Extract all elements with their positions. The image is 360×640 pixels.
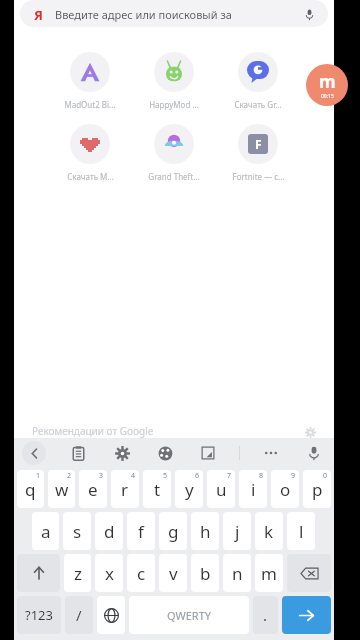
button[interactable]: More bbox=[259, 441, 283, 465]
staticText: v bbox=[169, 562, 178, 585]
staticText: b bbox=[200, 562, 211, 585]
staticText: Скачать М... bbox=[67, 171, 114, 182]
staticText: 6 bbox=[195, 471, 200, 481]
staticText: e bbox=[88, 478, 98, 501]
button[interactable]: h bbox=[191, 512, 219, 550]
button[interactable]: i bbox=[239, 470, 267, 508]
button[interactable]: p bbox=[303, 470, 331, 508]
staticText: c bbox=[137, 562, 146, 585]
button[interactable]: Скачать М... bbox=[48, 124, 132, 182]
button[interactable]: k bbox=[255, 512, 283, 550]
button[interactable]: Settings bbox=[304, 426, 316, 438]
staticText: 00:15 bbox=[321, 93, 334, 100]
button[interactable]: s bbox=[63, 512, 91, 550]
staticText: Grand Theft... bbox=[148, 171, 200, 182]
staticText: q bbox=[25, 478, 36, 501]
staticText: m bbox=[319, 70, 336, 93]
staticText: k bbox=[264, 520, 274, 543]
staticText: w bbox=[55, 478, 69, 501]
staticText: Я bbox=[34, 6, 43, 22]
staticText: j bbox=[235, 520, 240, 543]
staticText: p bbox=[312, 478, 323, 501]
staticText: . bbox=[263, 605, 268, 625]
button[interactable]: r bbox=[111, 470, 139, 508]
button[interactable]: b bbox=[191, 554, 219, 592]
button[interactable]: Clipboard bbox=[66, 441, 90, 465]
button[interactable]: F bbox=[216, 124, 300, 182]
button[interactable]: u bbox=[207, 470, 235, 508]
button[interactable]: Go bbox=[282, 596, 331, 634]
staticText: Рекомендации от Google bbox=[32, 424, 154, 438]
button[interactable]: / bbox=[65, 596, 93, 634]
button[interactable]: Back bbox=[22, 441, 46, 465]
staticText: 1 bbox=[36, 471, 41, 481]
staticText: l bbox=[299, 520, 304, 543]
staticText: 8 bbox=[259, 471, 264, 481]
button[interactable]: Скачать Gr... bbox=[216, 52, 300, 110]
staticText: a bbox=[41, 520, 51, 543]
button[interactable]: . bbox=[253, 596, 278, 634]
button[interactable]: MadOut2 Bi... bbox=[48, 52, 132, 110]
staticText: y bbox=[185, 478, 194, 501]
button[interactable]: w bbox=[48, 470, 75, 508]
button[interactable]: Shift bbox=[17, 554, 60, 592]
staticText: g bbox=[168, 520, 179, 543]
button[interactable]: q bbox=[17, 470, 44, 508]
staticText: 4 bbox=[131, 471, 136, 481]
button[interactable]: o bbox=[271, 470, 299, 508]
staticText: 9 bbox=[291, 471, 296, 481]
button[interactable]: v bbox=[159, 554, 187, 592]
button[interactable]: l bbox=[287, 512, 315, 550]
staticText: h bbox=[200, 520, 211, 543]
staticText: t bbox=[154, 478, 161, 501]
staticText: i bbox=[251, 478, 256, 501]
button[interactable]: f bbox=[127, 512, 155, 550]
staticText: r bbox=[121, 478, 129, 501]
staticText: s bbox=[73, 520, 82, 543]
button[interactable]: x bbox=[95, 554, 123, 592]
staticText: z bbox=[74, 562, 82, 585]
button[interactable]: Backspace bbox=[287, 554, 331, 592]
button[interactable]: Grand Theft... bbox=[132, 124, 216, 182]
staticText: Fortnite — c... bbox=[232, 171, 285, 182]
staticText: / bbox=[76, 605, 82, 625]
staticText: x bbox=[105, 562, 114, 585]
staticText: HappyMod ... bbox=[149, 99, 199, 110]
staticText: u bbox=[216, 478, 227, 501]
button[interactable]: Voice search bbox=[300, 5, 318, 23]
button[interactable]: g bbox=[159, 512, 187, 550]
button[interactable]: Voice input bbox=[302, 441, 326, 465]
button[interactable]: t bbox=[143, 470, 171, 508]
button[interactable]: a bbox=[32, 512, 59, 550]
staticText: 7 bbox=[227, 471, 232, 481]
button[interactable]: Change language bbox=[97, 596, 125, 634]
staticText: Введите адрес или поисковый за bbox=[55, 7, 300, 22]
button[interactable]: QWERTY bbox=[129, 596, 249, 634]
button[interactable]: n bbox=[223, 554, 251, 592]
button[interactable]: e bbox=[79, 470, 107, 508]
button[interactable]: m bbox=[255, 554, 283, 592]
staticText: MadOut2 Bi... bbox=[64, 99, 116, 110]
button[interactable]: Resize bbox=[196, 441, 220, 465]
button[interactable]: Settings bbox=[110, 441, 134, 465]
staticText: F bbox=[255, 136, 262, 152]
button[interactable]: Theme bbox=[153, 441, 177, 465]
button[interactable]: d bbox=[95, 512, 123, 550]
button[interactable]: ?123 bbox=[17, 596, 61, 634]
button[interactable]: Recorder bbox=[306, 64, 348, 106]
button[interactable]: HappyMod ... bbox=[132, 52, 216, 110]
staticText: ?123 bbox=[25, 606, 53, 624]
staticText: d bbox=[104, 520, 115, 543]
button[interactable]: y bbox=[175, 470, 203, 508]
staticText: m bbox=[261, 562, 277, 585]
staticText: o bbox=[280, 478, 291, 501]
button[interactable]: j bbox=[223, 512, 251, 550]
staticText: 5 bbox=[163, 471, 168, 481]
staticText: 3 bbox=[99, 471, 104, 481]
button[interactable]: z bbox=[64, 554, 91, 592]
staticText: f bbox=[138, 520, 144, 543]
staticText: 2 bbox=[67, 471, 72, 481]
button[interactable]: c bbox=[127, 554, 155, 592]
button[interactable]: Я bbox=[20, 0, 328, 27]
staticText: QWERTY bbox=[167, 608, 212, 623]
